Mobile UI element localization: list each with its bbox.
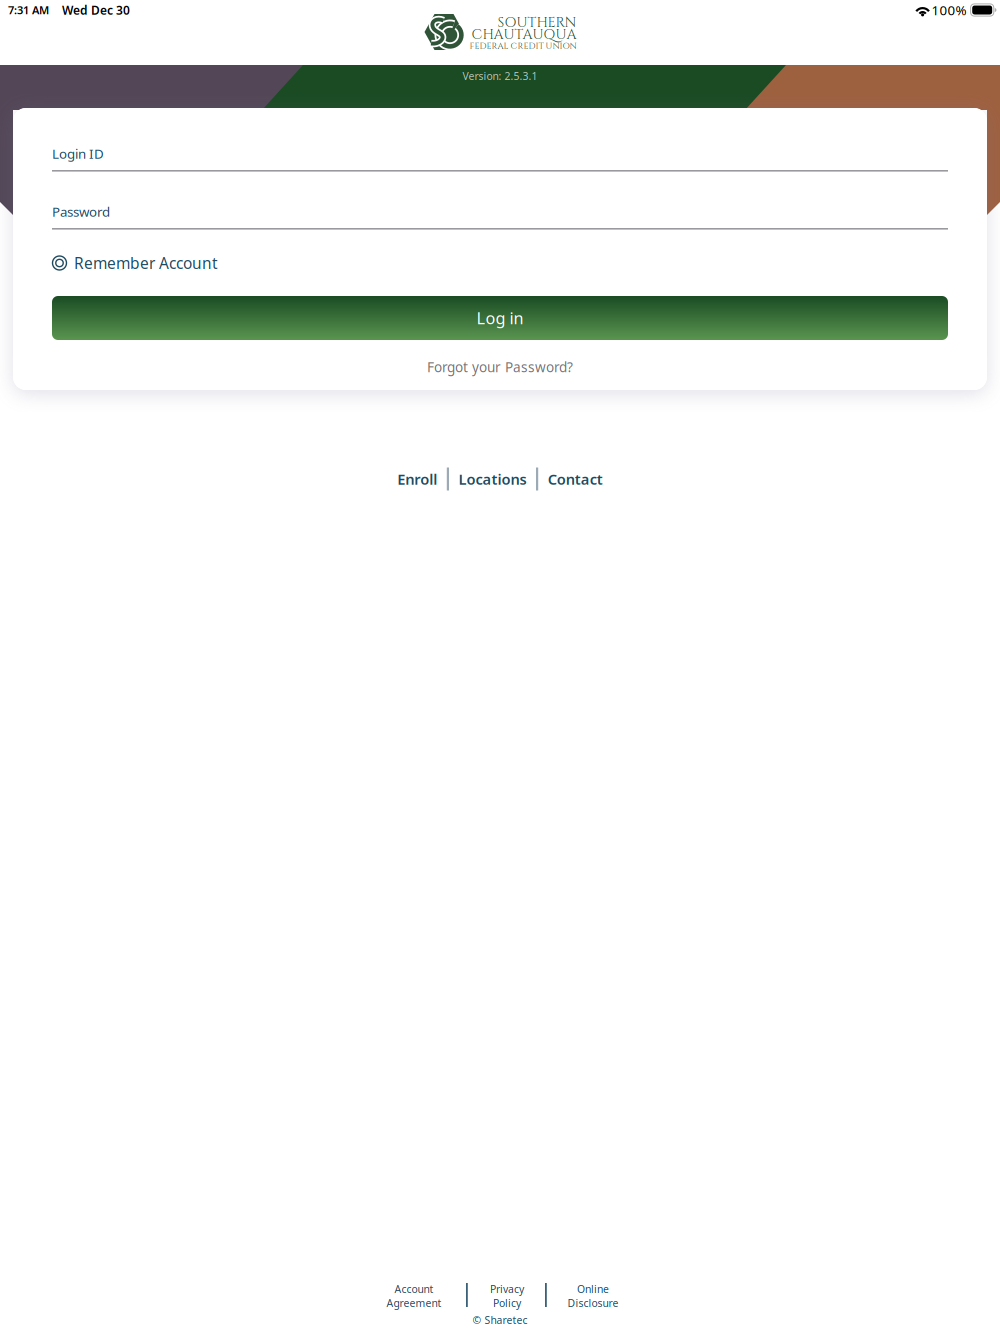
staticText: Policy — [493, 1296, 521, 1310]
staticText: 7:31 AM — [8, 2, 49, 18]
staticText: Locations — [458, 469, 526, 489]
button[interactable]: Online — [539, 1282, 647, 1310]
button[interactable]: Log in — [52, 296, 948, 340]
button[interactable]: Forgot your Password? — [52, 357, 948, 377]
staticText: Agreement — [386, 1296, 441, 1310]
staticText: Contact — [548, 469, 603, 489]
button[interactable]: Remember Account — [52, 253, 948, 273]
staticText: © Sharetec — [472, 1313, 527, 1327]
button[interactable]: Locations — [458, 467, 526, 491]
staticText: Forgot your Password? — [427, 358, 573, 376]
button[interactable]: Account — [360, 1282, 468, 1310]
staticText: Privacy — [490, 1282, 524, 1296]
staticText: Version: 2.5.3.1 — [462, 69, 537, 83]
staticText: SOUTHERN — [497, 13, 576, 32]
staticText: Remember Account — [74, 252, 218, 274]
staticText: Enroll — [397, 469, 437, 489]
button[interactable]: Enroll — [397, 467, 437, 491]
staticText: Login ID — [52, 144, 104, 163]
staticText: FEDERAL CREDIT UNION — [469, 40, 576, 52]
staticText: Log in — [476, 307, 523, 329]
staticText: 100% — [932, 1, 967, 19]
staticText: Account — [394, 1282, 433, 1296]
staticText: Password — [52, 202, 110, 221]
staticText: CHAUTAUQUA — [471, 25, 576, 44]
staticText: Disclosure — [567, 1296, 618, 1310]
button[interactable]: Contact — [548, 467, 603, 491]
button[interactable]: Privacy — [453, 1282, 561, 1310]
staticText: Wed Dec 30 — [62, 2, 130, 18]
staticText: Online — [577, 1282, 609, 1296]
